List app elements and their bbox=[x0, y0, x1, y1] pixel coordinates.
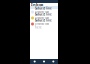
staticText: Inbox bbox=[31, 2, 43, 7]
button[interactable]: Subject line bbox=[30, 9, 58, 15]
staticText: Subject line bbox=[35, 7, 52, 10]
staticText: preview text here bbox=[35, 16, 49, 23]
button[interactable]: Tab bbox=[49, 59, 58, 64]
button[interactable]: Subject line bbox=[30, 21, 58, 27]
button[interactable]: Subject line bbox=[30, 15, 58, 21]
staticText: Subject line bbox=[35, 13, 52, 16]
staticText: preview text here bbox=[35, 10, 49, 17]
button[interactable]: Tab bbox=[39, 59, 49, 64]
staticText: Subject line bbox=[35, 19, 52, 22]
button[interactable]: Tab bbox=[30, 59, 39, 64]
staticText: preview text here bbox=[35, 22, 49, 29]
